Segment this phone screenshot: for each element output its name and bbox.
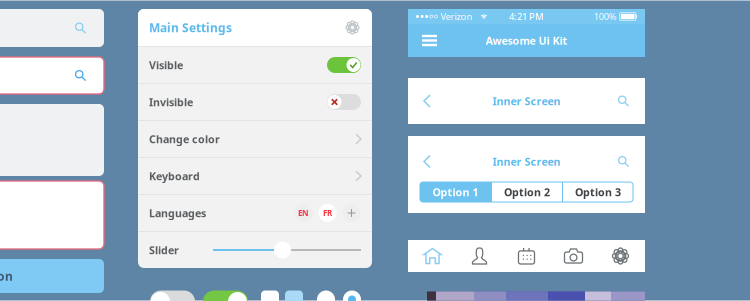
button[interactable]: Option 2	[492, 182, 562, 202]
button[interactable]: Search, focused	[0, 57, 104, 94]
button[interactable]: Back	[415, 146, 439, 176]
button[interactable]: Visible toggle, on	[327, 57, 361, 73]
staticText: Button	[0, 268, 13, 284]
button[interactable]: EN	[294, 203, 313, 222]
staticText: Change color	[149, 132, 220, 146]
staticText: Verizon	[440, 10, 472, 23]
staticText: Option 1	[432, 185, 478, 199]
staticText: FR	[323, 208, 332, 218]
staticText: Languages	[149, 206, 206, 220]
button[interactable]: Settings	[344, 19, 361, 36]
button[interactable]: Button	[0, 259, 104, 293]
button[interactable]: Camera	[550, 240, 597, 272]
staticText: Option 2	[504, 185, 550, 199]
staticText: Visible	[149, 58, 183, 72]
staticText: Awesome Ui Kit	[485, 33, 567, 48]
button[interactable]: Invisible toggle, off	[327, 94, 361, 110]
staticText: Invisible	[149, 95, 193, 109]
staticText: Slider	[149, 243, 179, 257]
button[interactable]: Invisible	[138, 83, 372, 120]
button[interactable]: Search	[0, 9, 104, 47]
button[interactable]: FR	[318, 203, 337, 222]
button[interactable]: Settings	[597, 240, 644, 272]
staticText: Inner Screen	[492, 154, 560, 169]
button[interactable]: Change color	[138, 120, 372, 157]
staticText: Main Settings	[149, 19, 232, 35]
button[interactable]: Visible	[138, 46, 372, 83]
button[interactable]: Search	[609, 147, 638, 176]
button[interactable]: Home	[409, 240, 456, 272]
staticText: Keyboard	[149, 169, 200, 183]
staticText: EN	[298, 208, 309, 218]
staticText: 100%	[594, 10, 617, 23]
button[interactable]: Calendar	[503, 240, 550, 272]
button[interactable]: Menu	[416, 30, 443, 51]
staticText: Option 3	[575, 185, 621, 199]
button[interactable]: Keyboard	[138, 157, 372, 194]
button[interactable]: Option 3	[563, 182, 633, 202]
button[interactable]: Add language	[342, 203, 361, 222]
staticText: Inner Screen	[492, 94, 560, 108]
button[interactable]: Back	[415, 86, 439, 116]
button[interactable]: Option 1	[420, 182, 491, 202]
button[interactable]: Profile	[456, 240, 503, 272]
staticText: 4:21 PM	[509, 10, 544, 23]
button[interactable]: Search	[609, 86, 638, 115]
